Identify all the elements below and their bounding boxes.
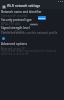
button[interactable]: Network name and identifier [0,10,64,18]
staticText: Metered, proxy, IP [1,47,25,51]
staticText: Signal strength level [1,26,30,30]
staticText: Security protocol type [1,18,32,22]
staticText: Your phone stays connected to this netwo… [1,49,57,56]
staticText: Wi-Fi network settings [7,4,40,8]
button[interactable]: Signal strength level [0,26,64,34]
staticText: Network name and identifier [1,10,42,14]
button[interactable]: CONNECT [38,16,46,20]
button[interactable]: Network status [2,37,5,40]
staticText: Connected devices use this network profi… [1,31,58,35]
button[interactable]: Settings [1,4,6,9]
staticText: WPA2-PSK AES [1,22,20,26]
staticText: Connected • secured [1,14,27,18]
staticText: Advanced options [1,42,27,46]
staticText: CONNECT [38,17,46,20]
button[interactable]: FORGET [30,23,38,26]
staticText: Excellent -42 dBm [1,30,25,34]
staticText: FORGET [30,23,38,26]
button[interactable]: Security protocol type [0,18,64,26]
